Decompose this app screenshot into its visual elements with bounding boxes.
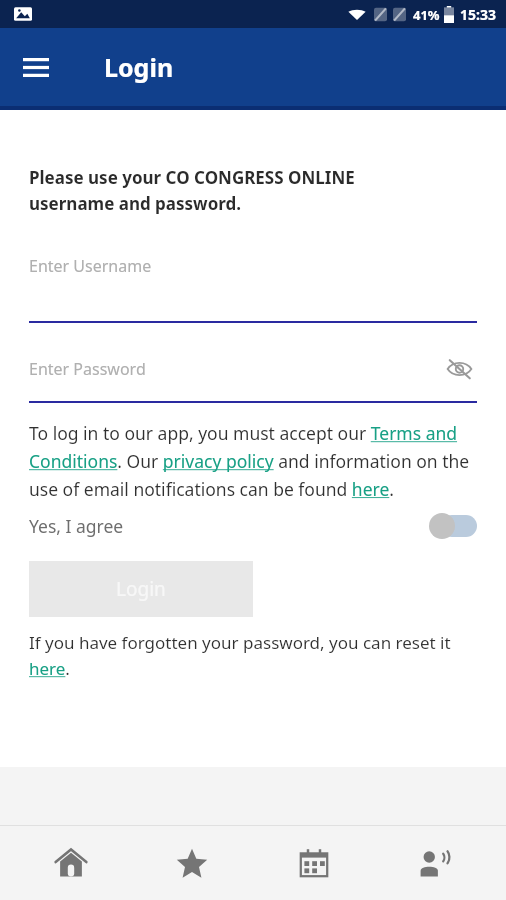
button[interactable]: Enter Password	[0, 351, 506, 403]
staticText: Yes, I agree	[29, 514, 124, 538]
staticText: 41%	[413, 6, 440, 24]
button[interactable]: Enter Username	[0, 255, 506, 323]
button[interactable]: Calendar	[264, 826, 364, 900]
staticText: Please use your CO CONGRESS ONLINE usern…	[29, 166, 355, 215]
staticText: 15:33	[460, 5, 496, 24]
button[interactable]: Open navigation menu	[12, 43, 60, 91]
staticText: Enter Password	[29, 358, 146, 380]
button[interactable]: Favourites	[142, 826, 242, 900]
staticText: Login	[116, 576, 166, 602]
button[interactable]: If you have forgotten your password, you…	[29, 631, 482, 680]
button[interactable]: Contact	[385, 826, 485, 900]
button[interactable]: To log in to our app, you must accept ou…	[29, 421, 482, 501]
button[interactable]: Yes, I agree	[0, 507, 506, 545]
staticText: Enter Username	[29, 255, 152, 277]
button[interactable]: Home	[21, 826, 121, 900]
staticText: Login	[104, 50, 174, 84]
button[interactable]: Show password	[441, 351, 477, 387]
